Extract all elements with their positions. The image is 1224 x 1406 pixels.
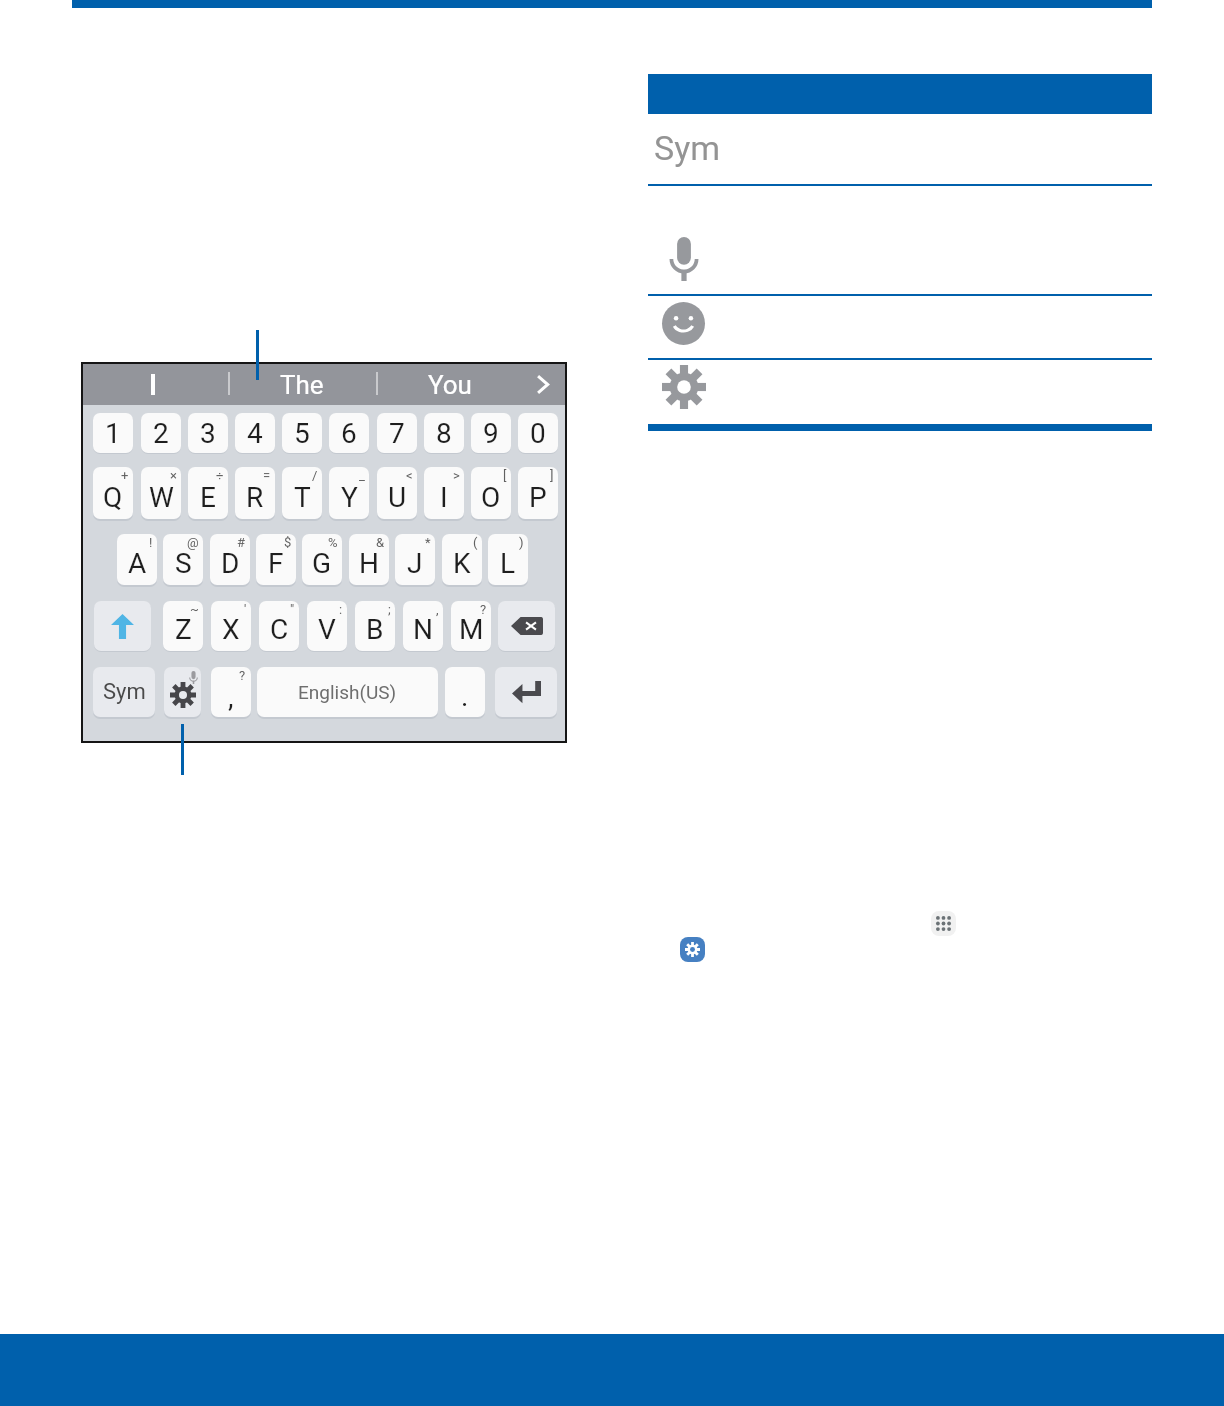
staticText: K xyxy=(453,547,471,580)
button[interactable]: 9 xyxy=(471,413,511,453)
button[interactable]: : xyxy=(307,601,347,651)
button[interactable]: Enter xyxy=(495,667,557,717)
staticText: R xyxy=(246,481,264,514)
button[interactable]: ? xyxy=(211,667,251,717)
button[interactable]: 2 xyxy=(141,413,181,453)
staticText: P xyxy=(529,481,547,514)
staticText: ' xyxy=(244,602,247,617)
button[interactable]: Sym xyxy=(93,667,155,717)
button[interactable]: × xyxy=(141,467,181,519)
button[interactable]: @ xyxy=(163,534,203,585)
button[interactable]: [ xyxy=(471,467,511,519)
staticText: ~ xyxy=(190,602,199,617)
button[interactable]: 6 xyxy=(329,413,369,453)
button[interactable]: ] xyxy=(518,467,558,519)
staticText: ÷ xyxy=(216,468,224,483)
button[interactable]: Settings xyxy=(648,360,1152,424)
staticText: U xyxy=(388,481,407,514)
staticText: $ xyxy=(284,535,292,550)
staticText: / xyxy=(312,468,318,483)
button[interactable]: Voice input xyxy=(648,186,1152,294)
button[interactable]: 4 xyxy=(235,413,275,453)
staticText: M xyxy=(459,613,484,646)
button[interactable]: Apps xyxy=(931,911,956,936)
button[interactable]: ; xyxy=(355,601,395,651)
button[interactable]: 5 xyxy=(282,413,322,453)
staticText: + xyxy=(121,468,129,483)
button[interactable]: 8 xyxy=(424,413,464,453)
button[interactable]: Emoji xyxy=(648,296,1152,358)
button[interactable]: ) xyxy=(488,534,528,585)
button[interactable]: % xyxy=(302,534,342,585)
button[interactable]: _ xyxy=(329,467,369,519)
staticText: X xyxy=(222,613,240,646)
staticText: , xyxy=(228,681,234,714)
staticText: ; xyxy=(388,602,391,617)
staticText: W xyxy=(149,481,174,514)
button[interactable]: , xyxy=(403,601,443,651)
button[interactable]: 0 xyxy=(518,413,558,453)
button[interactable]: + xyxy=(93,467,133,519)
staticText: , xyxy=(436,602,439,617)
staticText: H xyxy=(359,547,379,580)
button[interactable]: 1 xyxy=(93,413,133,453)
staticText: B xyxy=(366,613,384,646)
staticText: C xyxy=(270,613,289,646)
staticText: 0 xyxy=(530,417,546,450)
staticText: : xyxy=(339,602,343,617)
staticText: You xyxy=(428,370,472,400)
button[interactable]: > xyxy=(424,467,464,519)
staticText: * xyxy=(425,535,431,550)
staticText: N xyxy=(413,613,433,646)
staticText: # xyxy=(237,535,246,550)
button[interactable]: " xyxy=(259,601,299,651)
button[interactable]: Backspace xyxy=(498,601,555,651)
button[interactable]: You xyxy=(410,364,490,405)
staticText: ? xyxy=(480,602,487,617)
button[interactable]: ? xyxy=(451,601,491,651)
button[interactable]: The xyxy=(262,364,342,405)
button[interactable]: ! xyxy=(117,534,157,585)
staticText: A xyxy=(128,547,147,580)
button[interactable]: # xyxy=(210,534,250,585)
staticText: Q xyxy=(103,481,123,514)
staticText: J xyxy=(407,547,423,580)
button[interactable]: & xyxy=(349,534,389,585)
button[interactable]: Keyboard settings xyxy=(164,667,201,717)
staticText: > xyxy=(453,468,460,483)
staticText: @ xyxy=(187,535,199,550)
button[interactable]: ~ xyxy=(163,601,203,651)
button[interactable]: < xyxy=(377,467,417,519)
staticText: 1 xyxy=(105,417,121,450)
button[interactable]: $ xyxy=(256,534,296,585)
button[interactable]: Settings xyxy=(680,937,705,962)
staticText: & xyxy=(376,535,385,550)
staticText: _ xyxy=(359,468,365,483)
staticText: 7 xyxy=(389,417,405,450)
staticText: 9 xyxy=(483,417,499,450)
button[interactable]: ÷ xyxy=(188,467,228,519)
button[interactable]: ( xyxy=(442,534,482,585)
staticText: 2 xyxy=(153,417,169,450)
button[interactable]: / xyxy=(282,467,322,519)
staticText: O xyxy=(481,481,501,514)
staticText: × xyxy=(170,468,177,483)
staticText: L xyxy=(500,547,516,580)
staticText: English(US) xyxy=(298,681,397,703)
staticText: 3 xyxy=(200,417,216,450)
staticText: E xyxy=(200,481,216,514)
button[interactable]: * xyxy=(395,534,435,585)
button[interactable]: = xyxy=(235,467,275,519)
button[interactable]: Shift xyxy=(94,601,151,651)
staticText: The xyxy=(280,370,324,400)
button[interactable]: 3 xyxy=(188,413,228,453)
staticText: Sym xyxy=(103,679,146,705)
button[interactable]: Sym xyxy=(648,114,1152,184)
staticText: ] xyxy=(550,468,554,483)
button[interactable]: English(US) xyxy=(257,667,438,717)
button[interactable]: ' xyxy=(211,601,251,651)
staticText: V xyxy=(318,613,336,646)
button[interactable]: . xyxy=(445,667,485,717)
staticText: < xyxy=(406,468,413,483)
button[interactable]: 7 xyxy=(377,413,417,453)
